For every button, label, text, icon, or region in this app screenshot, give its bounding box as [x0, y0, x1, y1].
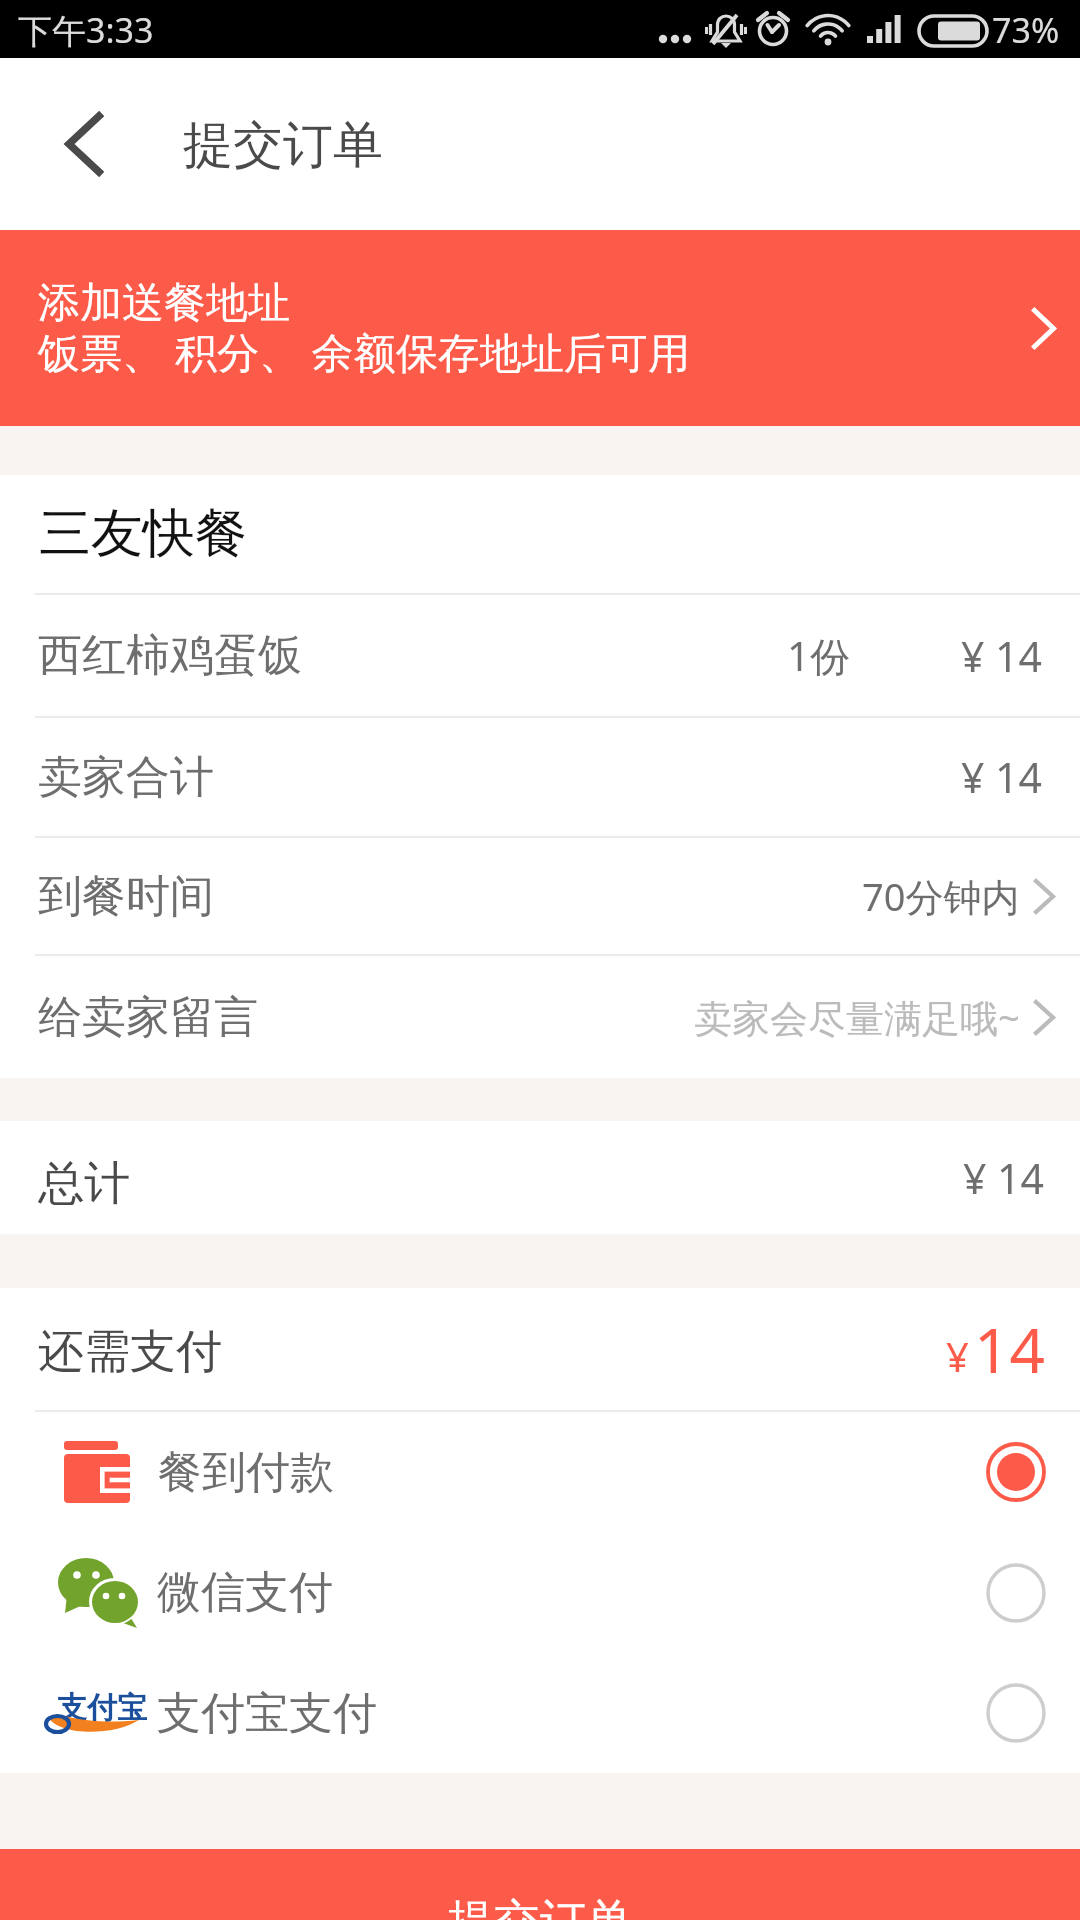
staticText: 卖家合计 [38, 750, 214, 805]
staticText: 支付宝支付 [157, 1686, 377, 1741]
staticText: 三友快餐 [39, 501, 247, 567]
button[interactable]: 给卖家留言 [0, 956, 1080, 1078]
staticText: 还需支付 [38, 1323, 222, 1381]
staticText: 卖家会尽量满足哦~ [694, 991, 1020, 1043]
staticText: 西红柿鸡蛋饭 [38, 628, 302, 683]
staticText: 下午3:33 [18, 7, 154, 53]
staticText: 14 [974, 1307, 1045, 1391]
staticText: 提交订单 [448, 1893, 632, 1920]
button[interactable]: 卖家合计 [0, 718, 1080, 836]
button[interactable]: 微信支付 [0, 1532, 1080, 1653]
button[interactable]: 西红柿鸡蛋饭 [0, 595, 1080, 716]
staticText: 1份 [787, 628, 850, 683]
staticText: ¥ 14 [961, 628, 1043, 684]
staticText: 添加送餐地址 饭票、 积分、 余额保存地址后可用 [38, 277, 690, 380]
button[interactable]: 提交订单 [0, 1849, 1080, 1920]
staticText: 到餐时间 [38, 869, 214, 924]
button[interactable]: 添加送餐地址 饭票、 积分、 余额保存地址后可用 [0, 230, 1080, 426]
staticText: 给卖家留言 [38, 990, 258, 1045]
button[interactable]: 支付宝 [0, 1653, 1080, 1773]
button[interactable]: Back [0, 58, 150, 230]
staticText: 73% [992, 7, 1060, 53]
staticText: 总计 [38, 1155, 130, 1213]
staticText: ¥ 14 [961, 749, 1043, 805]
button[interactable]: 餐到付款 [0, 1412, 1080, 1532]
staticText: ¥ [946, 1329, 969, 1383]
staticText: 提交订单 [183, 114, 383, 177]
staticText: 支付宝 [57, 1689, 147, 1727]
staticText: 70分钟内 [862, 870, 1020, 922]
staticText: 餐到付款 [158, 1445, 334, 1500]
button[interactable]: 到餐时间 [0, 838, 1080, 954]
staticText: ¥ 14 [963, 1150, 1045, 1206]
staticText: 微信支付 [157, 1565, 333, 1620]
